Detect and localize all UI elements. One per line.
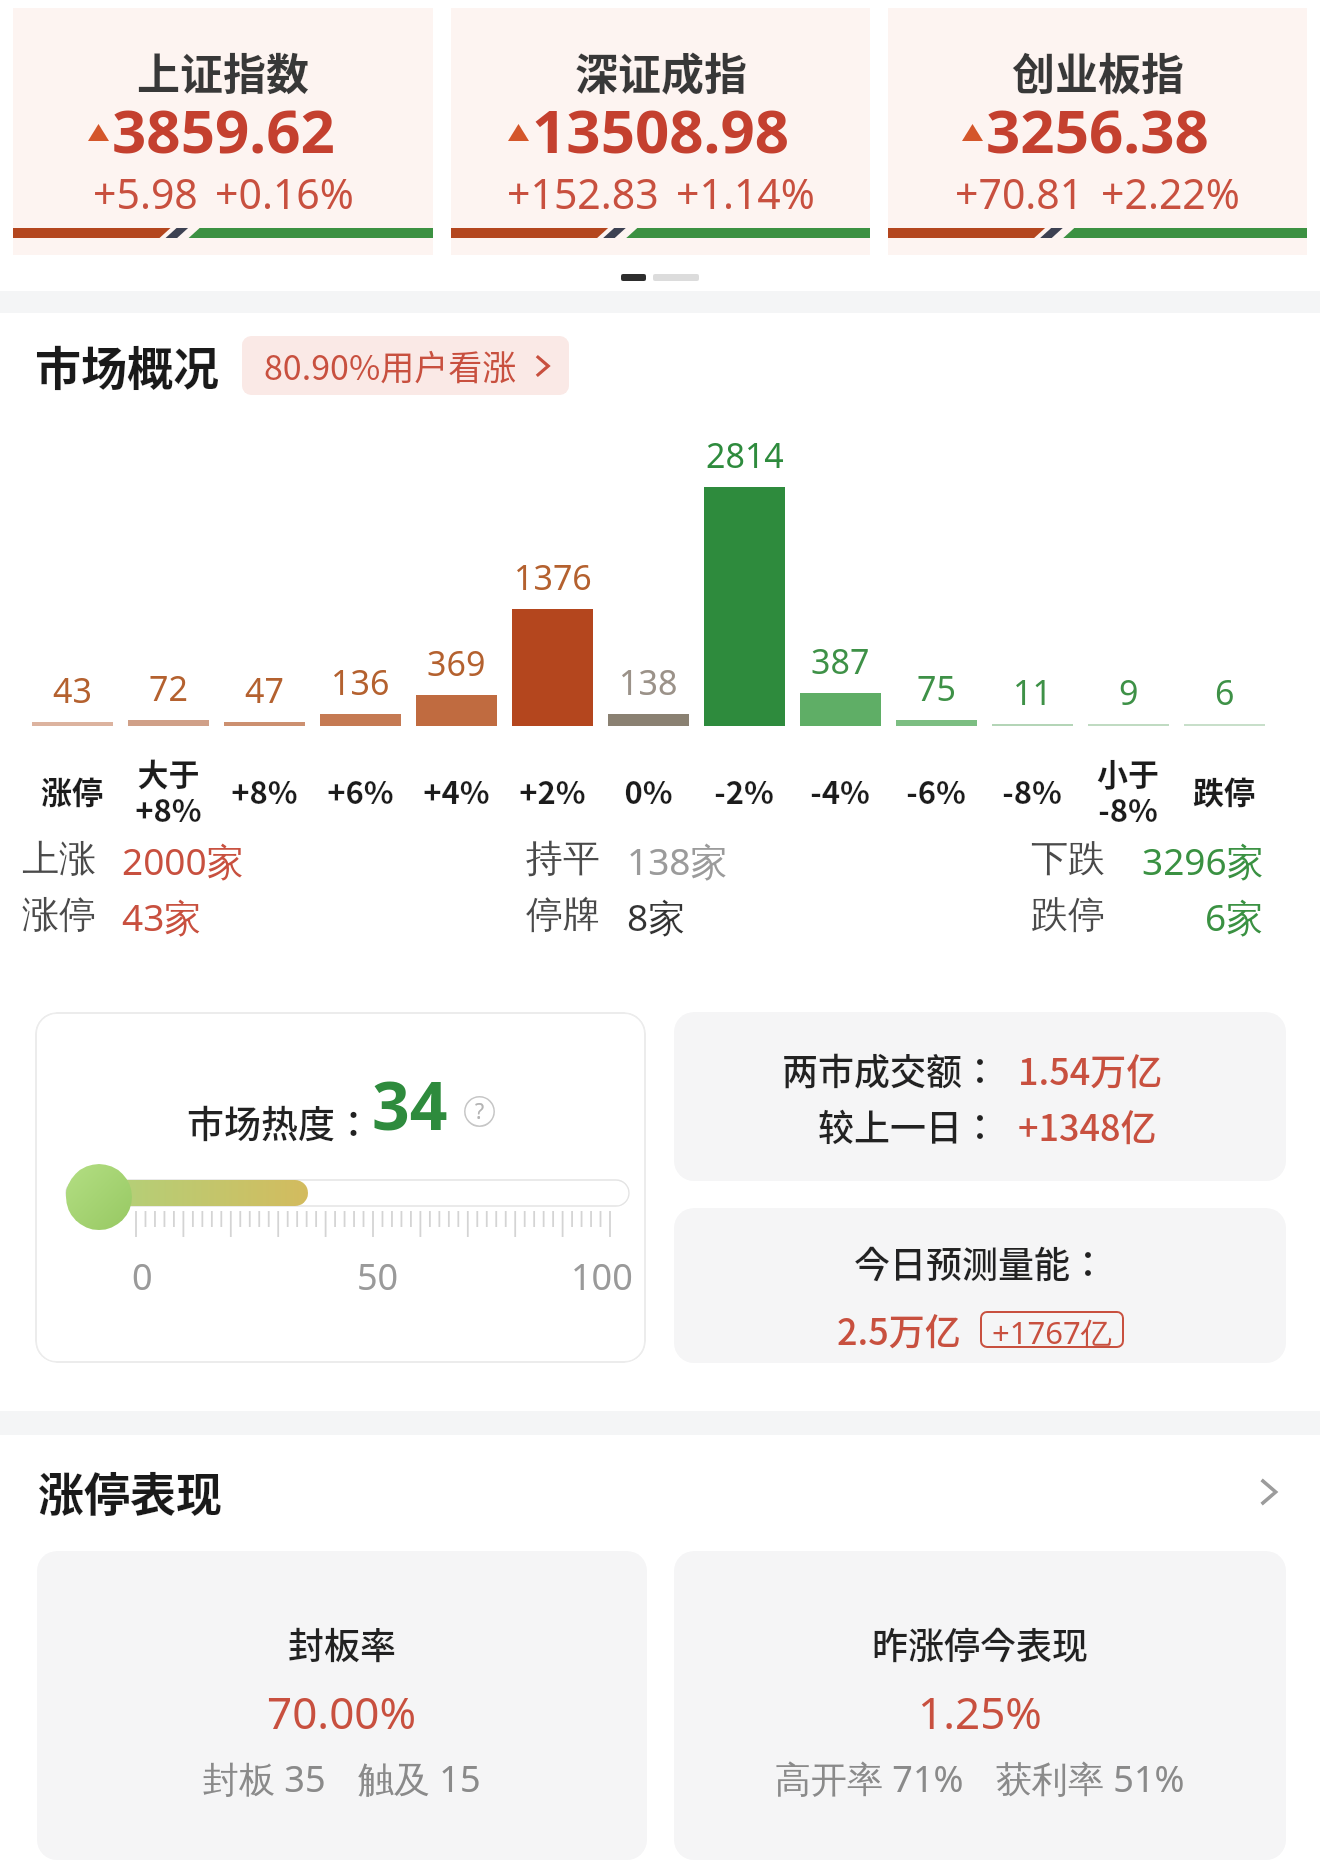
staticText: 小于 -8% [1097, 750, 1159, 830]
staticText: 上证指数 [137, 40, 309, 102]
staticText: 较上一日： [818, 1099, 999, 1151]
staticText: 持平 [526, 835, 600, 882]
staticText: 6 [1215, 669, 1235, 715]
staticText: 涨停 [41, 768, 103, 813]
staticText: +70.81 [955, 165, 1084, 221]
staticText: 1.54万亿 [1018, 1043, 1163, 1095]
staticText: 75 [917, 665, 956, 711]
staticText: 34 [372, 1059, 448, 1149]
staticText: 2000家 [122, 835, 244, 886]
staticText: +6% [327, 768, 394, 813]
button[interactable]: 市场热度： [35, 1012, 646, 1363]
staticText: 封板率 [288, 1617, 397, 1669]
staticText: +2.22% [1101, 165, 1240, 221]
staticText: 停牌 [526, 891, 600, 938]
staticText: 跌停 [1031, 891, 1105, 938]
button[interactable]: 深证成指 [451, 8, 870, 255]
staticText: 下跌 [1031, 835, 1105, 882]
staticText: 3256.38 [986, 89, 1209, 171]
staticText: 9 [1119, 669, 1139, 715]
staticText: 1.25% [918, 1682, 1042, 1742]
staticText: 涨停表现 [38, 1458, 222, 1525]
staticText: 3296家 [1142, 835, 1264, 886]
staticText: 43家 [122, 891, 202, 942]
staticText: 封板 35 [203, 1754, 326, 1803]
staticText: 369 [427, 640, 486, 686]
staticText: +5.98 [93, 165, 198, 221]
staticText: 387 [811, 638, 870, 684]
staticText: 0% [624, 768, 673, 813]
staticText: +1767亿 [992, 1311, 1112, 1348]
staticText: -6% [906, 768, 966, 813]
staticText: 138家 [627, 835, 728, 886]
button[interactable]: 80.90%用户看涨 [242, 336, 569, 395]
staticText: -4% [810, 768, 870, 813]
staticText: 50 [357, 1252, 399, 1301]
staticText: 70.00% [267, 1682, 417, 1742]
button[interactable]: 涨停表现 [0, 1458, 1320, 1525]
staticText: +0.16% [215, 165, 354, 221]
staticText: 8家 [627, 891, 686, 942]
staticText: -8% [1002, 768, 1062, 813]
button[interactable]: 昨涨停今表现 [674, 1551, 1286, 1860]
staticText: 市场概况 [35, 332, 219, 399]
staticText: 创业板指 [1012, 40, 1184, 102]
staticText: 3859.62 [112, 89, 335, 171]
staticText: 11 [1013, 669, 1052, 715]
staticText: 获利率 51% [996, 1754, 1185, 1803]
staticText: +1.14% [676, 165, 815, 221]
staticText: -2% [714, 768, 774, 813]
staticText: 80.90%用户看涨 [264, 341, 517, 390]
staticText: 2814 [706, 432, 784, 478]
staticText: 2.5万亿 [837, 1303, 961, 1355]
staticText: 0 [132, 1252, 153, 1301]
button[interactable]: 今日预测量能： [674, 1208, 1286, 1363]
staticText: 138 [619, 659, 678, 705]
staticText: 6家 [1205, 891, 1264, 942]
button[interactable]: 创业板指 [888, 8, 1307, 255]
staticText: 深证成指 [575, 40, 747, 102]
staticText: 两市成交额： [782, 1043, 999, 1095]
staticText: 1376 [514, 554, 592, 600]
staticText: 上涨 [22, 835, 96, 882]
staticText: ? [475, 1097, 485, 1126]
staticText: 47 [245, 667, 284, 713]
staticText: 昨涨停今表现 [872, 1617, 1089, 1669]
staticText: 触及 15 [358, 1754, 481, 1803]
staticText: 13508.98 [532, 89, 790, 171]
staticText: 43 [53, 667, 92, 713]
staticText: 大于 +8% [135, 750, 202, 830]
staticText: 100 [571, 1252, 633, 1301]
staticText: 136 [331, 659, 390, 705]
staticText: +152.83 [507, 165, 659, 221]
staticText: 高开率 71% [775, 1754, 964, 1803]
other: 查看涨停表现 [1252, 1476, 1284, 1508]
staticText: 市场热度： [187, 1095, 372, 1149]
button[interactable]: 上证指数 [13, 8, 433, 255]
staticText: 涨停 [22, 891, 96, 938]
staticText: 72 [149, 665, 188, 711]
staticText: +1348亿 [1018, 1099, 1157, 1151]
staticText: +8% [231, 768, 298, 813]
button[interactable]: 两市成交额： [674, 1012, 1286, 1181]
staticText: 今日预测量能： [854, 1236, 1107, 1288]
button[interactable]: 封板率 [37, 1551, 647, 1860]
staticText: 跌停 [1193, 768, 1255, 813]
staticText: +2% [519, 768, 586, 813]
staticText: +4% [423, 768, 490, 813]
